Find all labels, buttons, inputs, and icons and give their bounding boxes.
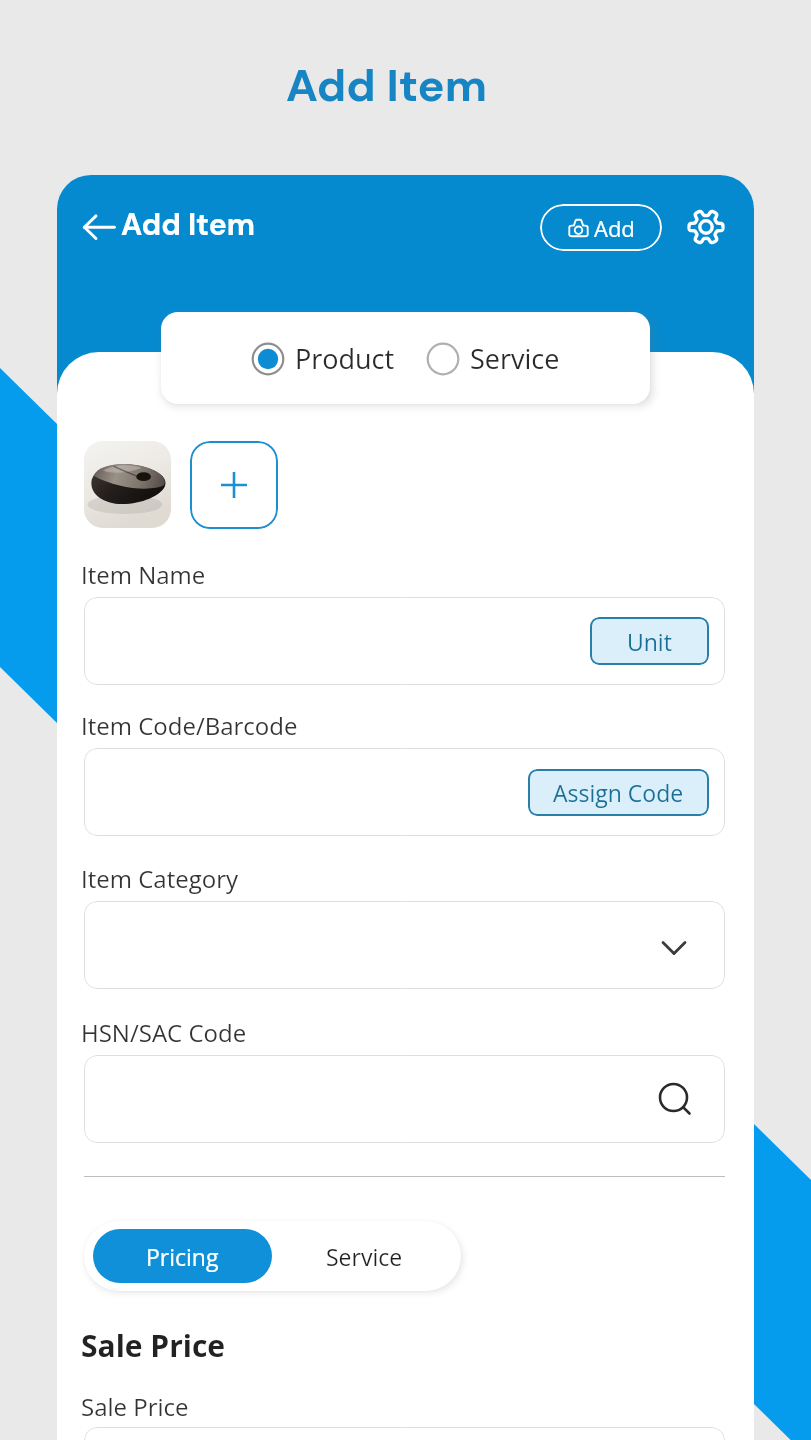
staticText: Add Item <box>286 56 487 115</box>
staticText: Item Name <box>81 558 206 591</box>
staticText: Assign Code <box>553 777 684 808</box>
button[interactable]: Settings <box>686 207 726 247</box>
staticText: Item Code/Barcode <box>81 709 298 742</box>
button[interactable]: Unit <box>590 617 709 665</box>
button[interactable]: Service <box>426 340 560 377</box>
button[interactable]: Service <box>272 1229 457 1283</box>
staticText: Service <box>470 340 560 377</box>
staticText: Add Item <box>121 205 255 244</box>
staticText: Add <box>594 213 635 243</box>
button[interactable]: Unit <box>84 597 725 685</box>
button[interactable]: Product <box>251 340 395 377</box>
button[interactable]: Assign Code <box>528 769 709 816</box>
button[interactable]: Back <box>78 208 120 250</box>
staticText: Pricing <box>146 1241 219 1272</box>
staticText: Sale Price <box>81 1325 226 1366</box>
staticText: Product <box>295 340 395 377</box>
staticText: Unit <box>627 626 672 657</box>
button[interactable]: Product photo <box>84 441 171 528</box>
button[interactable]: Assign Code <box>84 748 725 836</box>
button[interactable]: Add photo <box>190 441 278 529</box>
staticText: HSN/SAC Code <box>81 1016 247 1049</box>
staticText: Item Category <box>81 862 238 895</box>
staticText: Service <box>326 1241 403 1272</box>
button[interactable]: Add <box>540 204 662 251</box>
button[interactable] <box>84 1055 725 1143</box>
button[interactable] <box>84 901 725 989</box>
button[interactable] <box>84 1427 725 1440</box>
button[interactable]: Pricing <box>93 1229 272 1283</box>
staticText: Sale Price <box>81 1390 189 1423</box>
